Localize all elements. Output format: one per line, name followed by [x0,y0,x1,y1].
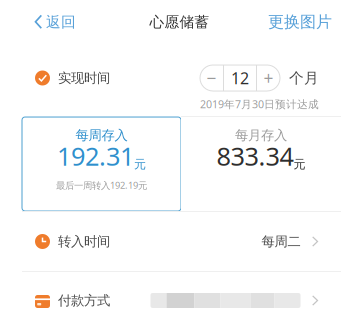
staticText: 每周二 [261,233,300,250]
staticText: 12 [231,67,249,89]
staticText: 833.34 [216,139,293,173]
button[interactable]: Decrease [200,65,223,91]
staticText: 每月存入 [235,127,287,143]
button[interactable]: 更换图片 [256,0,341,44]
button[interactable]: 付款方式 [0,272,341,329]
staticText: 更换图片 [268,12,332,32]
staticText: 个月 [289,69,319,87]
button[interactable]: Increase [257,65,280,91]
staticText: 每周存入 [75,127,127,143]
staticText: 2019年7月30日预计达成 [200,97,319,111]
staticText: 元 [134,157,146,172]
staticText: 192.31 [57,139,134,173]
staticText: 元 [293,157,305,172]
staticText: 付款方式 [58,292,110,309]
staticText: 实现时间 [58,70,110,86]
button[interactable]: 返回 [0,0,86,44]
staticText: 最后一周转入192.19元 [56,179,147,191]
staticText: 心愿储蓄 [149,13,209,31]
button[interactable]: 转入时间 [0,212,341,271]
button[interactable]: 每周存入 [22,117,181,211]
staticText: 返回 [46,13,76,31]
staticText: − [206,66,216,89]
staticText: 转入时间 [58,233,110,250]
staticText: + [263,66,273,89]
button[interactable]: 每月存入 [181,117,341,211]
